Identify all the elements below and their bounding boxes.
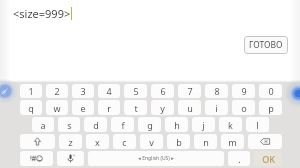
staticText: p	[268, 102, 274, 114]
staticText: ГОТОВО	[249, 39, 283, 51]
staticText: y	[160, 102, 165, 114]
staticText: r	[107, 102, 111, 114]
button[interactable]: k	[219, 117, 242, 132]
button[interactable]: u	[178, 100, 201, 115]
staticText: l	[256, 119, 259, 131]
button[interactable]: b	[167, 134, 190, 149]
staticText: .	[238, 153, 241, 165]
button[interactable]: y	[151, 100, 174, 115]
staticText: x	[95, 136, 100, 148]
button[interactable]: q	[20, 100, 42, 115]
staticText: c	[122, 136, 127, 148]
button[interactable]: ◂ English (US) ▸	[88, 151, 224, 166]
staticText: g	[147, 119, 153, 131]
staticText: ◂ English (US) ▸	[138, 155, 174, 162]
staticText: w	[53, 102, 61, 114]
staticText: j	[202, 119, 205, 131]
button[interactable]: 6	[151, 84, 174, 98]
button[interactable]: p	[259, 100, 282, 115]
staticText: b	[176, 136, 182, 148]
button[interactable]: x	[86, 134, 109, 149]
staticText: m	[228, 136, 237, 148]
button[interactable]: o	[232, 100, 255, 115]
button[interactable]: i	[205, 100, 228, 115]
button[interactable]: Shift	[20, 134, 55, 149]
button[interactable]: h	[165, 117, 188, 132]
staticText: t	[134, 102, 138, 114]
staticText: 9	[241, 85, 247, 97]
staticText: s	[67, 119, 72, 131]
staticText: 4	[106, 85, 112, 97]
button[interactable]: t	[124, 100, 147, 115]
button[interactable]: l	[246, 117, 269, 132]
staticText: k	[228, 119, 233, 131]
staticText: 6	[160, 85, 166, 97]
button[interactable]: n	[194, 134, 217, 149]
staticText: e	[80, 102, 86, 114]
button[interactable]: f	[111, 117, 134, 132]
staticText: <size=999>	[13, 6, 71, 21]
button[interactable]: 2	[46, 84, 68, 98]
staticText: a	[40, 119, 46, 131]
staticText: 3	[80, 85, 86, 97]
button[interactable]: s	[58, 117, 80, 132]
staticText: f	[121, 119, 125, 131]
button[interactable]: 9	[232, 84, 255, 98]
staticText: d	[93, 119, 99, 131]
staticText: 2	[54, 85, 60, 97]
staticText: u	[187, 102, 193, 114]
staticText: h	[174, 119, 180, 131]
button[interactable]: Backspace	[248, 134, 282, 149]
button[interactable]: ГОТОВО	[244, 36, 288, 54]
staticText: 7	[187, 85, 193, 97]
button[interactable]: 4	[98, 84, 120, 98]
button[interactable]: .	[228, 151, 250, 166]
button[interactable]: j	[192, 117, 215, 132]
button[interactable]: 0	[259, 84, 282, 98]
button[interactable]: v	[140, 134, 163, 149]
staticText: 5	[133, 85, 139, 97]
button[interactable]: 7	[178, 84, 201, 98]
button[interactable]: d	[84, 117, 107, 132]
button[interactable]: Voice input	[57, 151, 84, 166]
staticText: n	[203, 136, 209, 148]
staticText: i	[215, 102, 218, 114]
staticText: o	[241, 102, 247, 114]
staticText: 8	[214, 85, 220, 97]
button[interactable]: e	[72, 100, 94, 115]
staticText: OK	[262, 153, 275, 165]
button[interactable]: 1	[20, 84, 42, 98]
button[interactable]: 5	[124, 84, 147, 98]
button[interactable]: m	[221, 134, 244, 149]
staticText: q	[28, 102, 34, 114]
button[interactable]: g	[138, 117, 161, 132]
button[interactable]: w	[46, 100, 68, 115]
button[interactable]: OK	[254, 151, 282, 166]
button[interactable]: a	[32, 117, 54, 132]
staticText: 0	[268, 85, 274, 97]
staticText: v	[149, 136, 154, 148]
button[interactable]: 3	[72, 84, 94, 98]
button[interactable]: 8	[205, 84, 228, 98]
button[interactable]: Symbols and emoji	[20, 151, 53, 166]
staticText: 1	[28, 85, 34, 97]
button[interactable]: z	[59, 134, 82, 149]
button[interactable]: r	[98, 100, 120, 115]
staticText: z	[68, 136, 73, 148]
button[interactable]: c	[113, 134, 136, 149]
